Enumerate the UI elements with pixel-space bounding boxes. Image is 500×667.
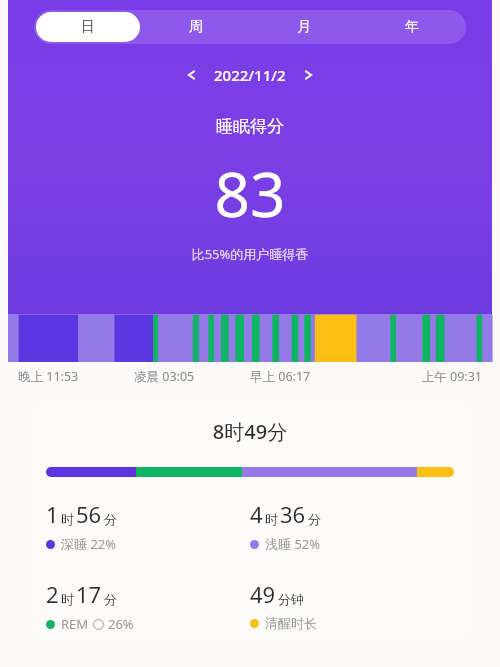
staticText: 睡眠得分 [8,116,492,137]
staticText: REM [61,615,89,633]
staticText: 早上 06:17 [250,368,366,385]
staticText: 17 [76,579,102,609]
button[interactable]: 1 [46,499,250,553]
staticText: 2 [46,579,59,609]
button[interactable]: 年 [360,12,464,42]
staticText: 清醒时长 [265,615,317,631]
button[interactable]: Next day [296,62,322,88]
staticText: 比55%的用户睡得香 [8,245,492,263]
button[interactable]: Previous day [178,62,204,88]
staticText: 4 [250,499,263,529]
staticText: 分 [308,511,321,527]
staticText: 36 [280,499,306,529]
other: REM info [93,619,104,630]
staticText: 分 [104,591,117,607]
staticText: 晚上 11:53 [18,368,134,385]
button[interactable]: 月 [252,12,356,42]
staticText: 时 [61,511,74,527]
staticText: 年 [405,18,419,36]
staticText: 月 [297,18,311,36]
staticText: 83 [8,151,492,235]
button[interactable]: 日 [36,12,140,42]
staticText: 凌晨 03:05 [134,368,250,385]
button[interactable]: 周 [144,12,248,42]
staticText: 日 [81,18,95,36]
button[interactable]: 4 [250,499,454,553]
staticText: 时 [61,591,74,607]
staticText: 56 [76,499,102,529]
staticText: 深睡 22% [61,535,117,553]
staticText: 上午 09:31 [366,368,482,385]
staticText: 分钟 [278,591,304,607]
button[interactable]: 8时49分 [30,402,470,640]
staticText: 1 [46,499,59,529]
button[interactable]: 49 [250,579,454,631]
staticText: 8时49分 [46,418,454,445]
staticText: 49 [250,579,276,609]
button[interactable]: 2 [46,579,250,633]
staticText: 浅睡 52% [265,535,321,553]
staticText: 时 [265,511,278,527]
staticText: 分 [104,511,117,527]
staticText: 2022/11/2 [214,65,286,85]
staticText: 26% [108,615,134,633]
staticText: 周 [189,18,203,36]
